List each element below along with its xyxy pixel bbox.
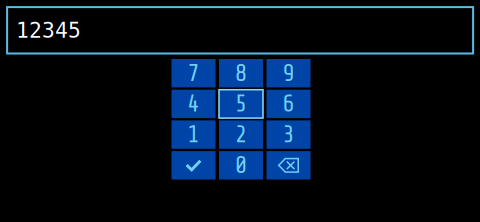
staticText: 0 bbox=[234, 152, 247, 179]
button[interactable]: Enter bbox=[171, 151, 215, 179]
staticText: 9 bbox=[282, 60, 295, 87]
button[interactable]: 7 bbox=[171, 59, 215, 87]
staticText: 6 bbox=[282, 90, 295, 117]
button[interactable]: Delete bbox=[266, 151, 310, 179]
button[interactable]: 9 bbox=[266, 59, 310, 87]
staticText: 3 bbox=[282, 121, 295, 148]
button[interactable]: 1 bbox=[171, 120, 215, 149]
staticText: 1 bbox=[187, 121, 200, 148]
staticText: 5 bbox=[234, 90, 247, 117]
staticText: 4 bbox=[187, 90, 200, 117]
button[interactable]: 4 bbox=[171, 90, 215, 118]
button[interactable]: 8 bbox=[219, 59, 263, 87]
button[interactable]: 5 bbox=[219, 90, 263, 118]
staticText: 2 bbox=[234, 121, 247, 148]
staticText: 7 bbox=[187, 60, 200, 87]
button[interactable]: 6 bbox=[266, 90, 310, 118]
staticText: 8 bbox=[234, 60, 247, 87]
button[interactable]: 2 bbox=[219, 120, 263, 149]
staticText: 12345 bbox=[16, 18, 81, 43]
button[interactable]: 3 bbox=[266, 120, 310, 149]
button[interactable]: 0 bbox=[219, 151, 263, 179]
